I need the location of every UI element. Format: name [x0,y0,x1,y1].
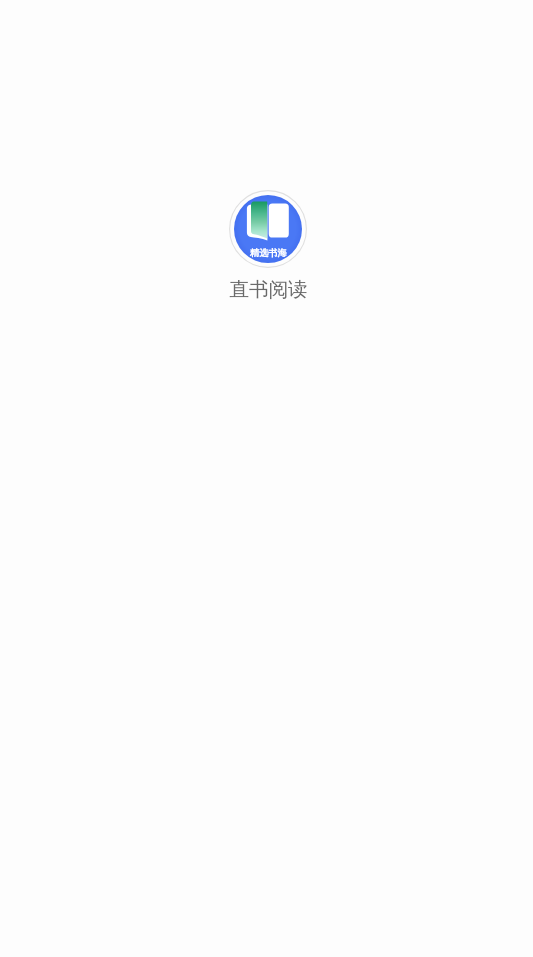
button[interactable]: 直书阅读 [229,277,308,302]
staticText: 精选书海 [250,247,287,259]
button[interactable]: 直书阅读 app icon [229,190,307,268]
